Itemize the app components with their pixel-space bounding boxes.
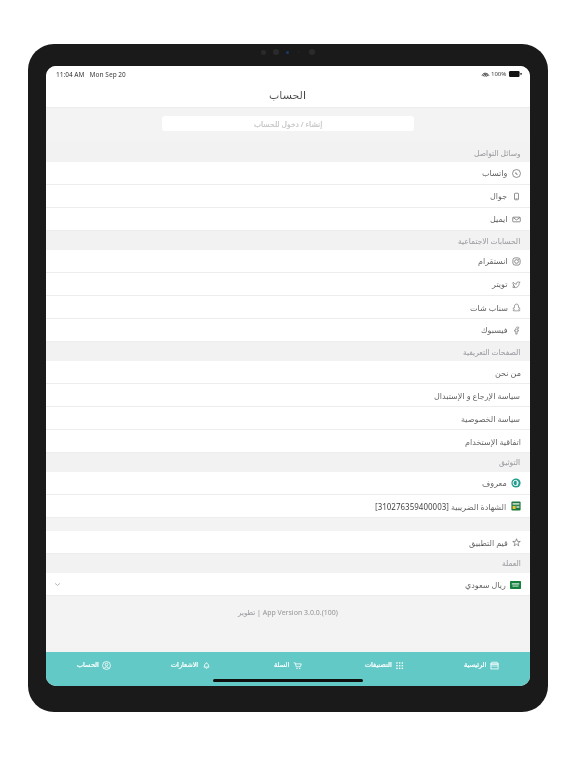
staticText: الاشعارات xyxy=(171,661,199,669)
staticText: الشهادة الضريبية [310276359400003] xyxy=(375,501,507,512)
button[interactable]: الشهادة الضريبية [310276359400003] xyxy=(46,495,530,517)
staticText: انستقرام xyxy=(478,257,508,266)
staticText: ريال سعودي xyxy=(465,579,506,590)
staticText: السلة xyxy=(274,661,290,669)
button[interactable]: اتفاقية الإستخدام xyxy=(46,430,530,452)
staticText: سناب شات xyxy=(470,302,508,313)
button[interactable]: الحساب xyxy=(46,652,142,678)
staticText: الصفحات التعريفية xyxy=(463,347,521,357)
other: Expand currency xyxy=(54,581,61,588)
staticText: التوثيق xyxy=(499,458,521,467)
button[interactable]: ايميل xyxy=(46,208,530,230)
staticText: الحسابات الاجتماعية xyxy=(458,236,521,246)
staticText: معروف xyxy=(482,479,507,488)
staticText: سياسة الإرجاع و الإستبدال xyxy=(434,390,521,401)
staticText: جوال xyxy=(490,192,508,201)
button[interactable]: تويتر xyxy=(46,273,530,295)
staticText: 100% xyxy=(491,70,507,78)
button[interactable]: الاشعارات xyxy=(142,652,239,678)
button[interactable]: واتساب xyxy=(46,162,530,184)
staticText: إنشاء / دخول للحساب xyxy=(254,119,323,129)
staticText: اتفاقية الإستخدام xyxy=(465,436,521,447)
button[interactable]: من نحن xyxy=(46,361,530,383)
button[interactable]: التصنيفات xyxy=(336,652,433,678)
staticText: تويتر xyxy=(492,280,508,289)
staticText: العملة xyxy=(502,559,521,568)
staticText: الرئيسية xyxy=(464,661,487,669)
staticText: الحساب xyxy=(77,661,99,669)
staticText: فيسبوك xyxy=(481,326,508,335)
staticText: وسائل التواصل xyxy=(474,148,521,158)
staticText: سياسة الخصوصية xyxy=(461,413,521,424)
staticText: التصنيفات xyxy=(365,661,392,669)
button[interactable]: سياسة الإرجاع و الإستبدال xyxy=(46,384,530,406)
button[interactable]: سناب شات xyxy=(46,296,530,318)
button[interactable]: جوال xyxy=(46,185,530,207)
staticText: واتساب xyxy=(482,169,508,178)
staticText: قيم التطبيق xyxy=(469,537,508,548)
staticText: ايميل xyxy=(490,215,508,224)
button[interactable]: سياسة الخصوصية xyxy=(46,407,530,429)
button[interactable]: إنشاء / دخول للحساب xyxy=(162,116,414,131)
button[interactable]: معروف xyxy=(46,472,530,494)
button[interactable]: ريال سعودي xyxy=(46,573,530,595)
button[interactable]: فيسبوك xyxy=(46,319,530,341)
staticText: 11:04 AM Mon Sep 20 xyxy=(56,70,126,79)
button[interactable]: الرئيسية xyxy=(433,652,530,678)
staticText: من نحن xyxy=(495,367,521,378)
button[interactable]: قيم التطبيق xyxy=(46,531,530,553)
staticText: الحساب xyxy=(269,89,307,102)
button[interactable]: السلة xyxy=(239,652,336,678)
staticText: تطوير | App Version 3.0.0.(100) xyxy=(46,608,530,618)
button[interactable]: انستقرام xyxy=(46,250,530,272)
